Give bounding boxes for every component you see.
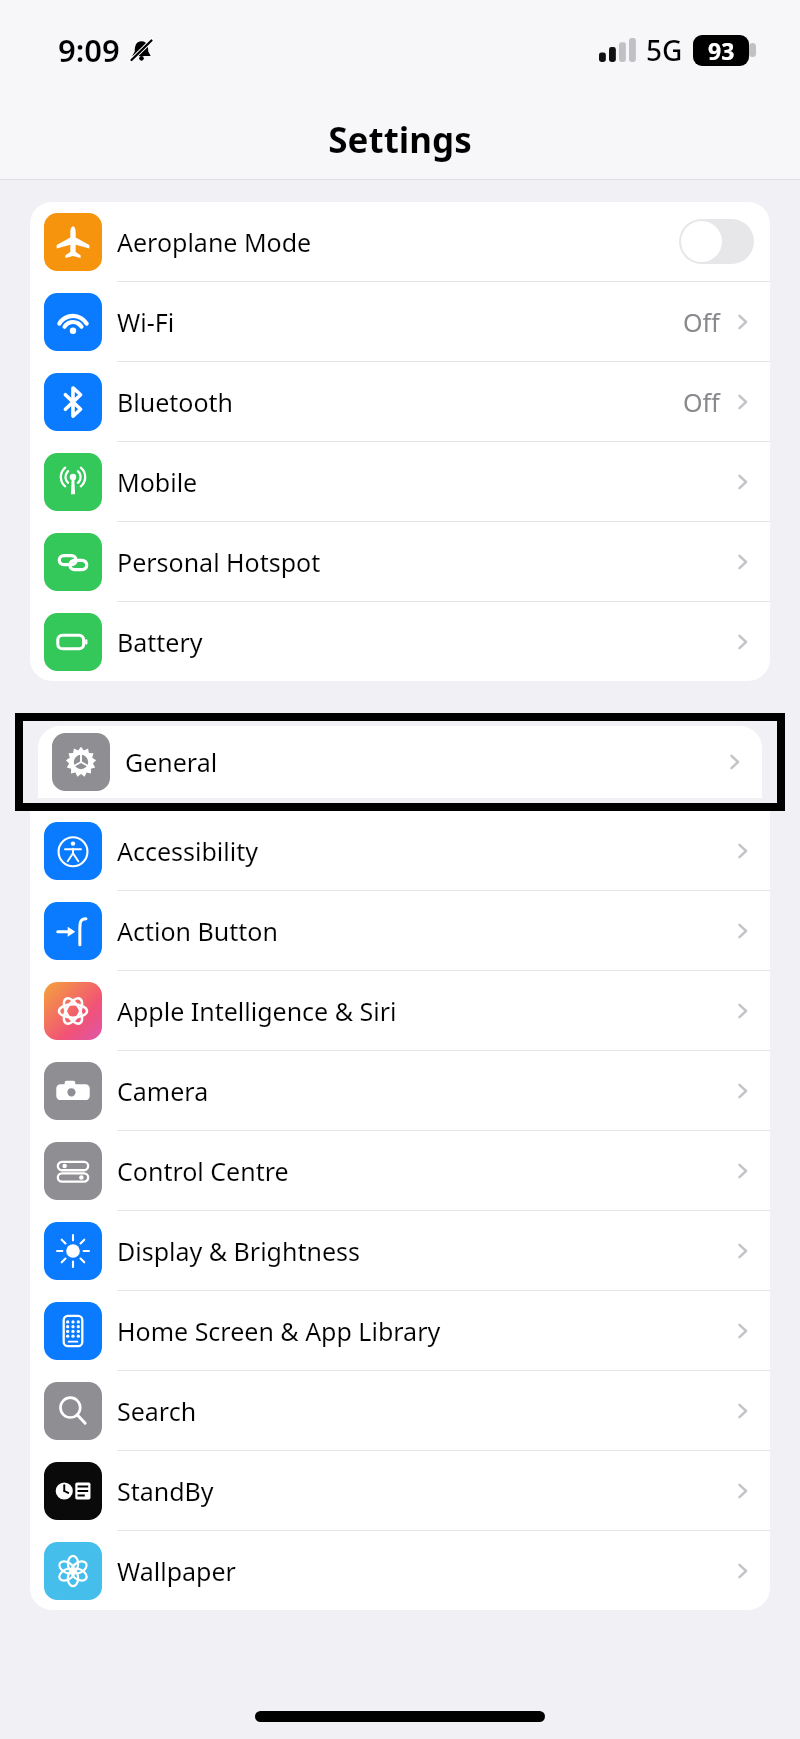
- button[interactable]: Bluetooth: [30, 362, 770, 442]
- other: Open: [732, 1080, 754, 1102]
- staticText: 5G: [646, 31, 683, 69]
- button[interactable]: Battery: [30, 602, 770, 681]
- staticText: General: [125, 745, 724, 779]
- other: Open: [732, 1160, 754, 1182]
- other: Open: [732, 391, 754, 413]
- staticText: Settings: [328, 116, 472, 164]
- button[interactable]: Control Centre: [30, 1131, 770, 1211]
- staticText: Wi-Fi: [117, 305, 683, 339]
- button[interactable]: Accessibility: [30, 811, 770, 891]
- button[interactable]: Apple Intelligence & Siri: [30, 971, 770, 1051]
- button[interactable]: Camera: [30, 1051, 770, 1131]
- staticText: StandBy: [117, 1474, 732, 1508]
- staticText: Battery: [117, 625, 732, 659]
- button[interactable]: Personal Hotspot: [30, 522, 770, 602]
- staticText: 93: [708, 35, 735, 66]
- staticText: Mobile: [117, 465, 732, 499]
- staticText: Search: [117, 1394, 732, 1428]
- button[interactable]: Wallpaper: [30, 1531, 770, 1610]
- other: Open: [732, 840, 754, 862]
- button[interactable]: General: [38, 726, 762, 798]
- staticText: Aeroplane Mode: [117, 225, 679, 259]
- other: Open: [732, 1480, 754, 1502]
- button[interactable]: Home Screen & App Library: [30, 1291, 770, 1371]
- button[interactable]: Mobile: [30, 442, 770, 522]
- button[interactable]: StandBy: [30, 1451, 770, 1531]
- other: Open: [732, 311, 754, 333]
- other: Open: [724, 751, 746, 773]
- other: Open: [732, 551, 754, 573]
- staticText: Display & Brightness: [117, 1234, 732, 1268]
- staticText: Wallpaper: [117, 1554, 732, 1588]
- staticText: Accessibility: [117, 834, 732, 868]
- button[interactable]: Wi-Fi: [30, 282, 770, 362]
- button[interactable]: Aeroplane Mode: [30, 202, 770, 282]
- other: Open: [732, 1240, 754, 1262]
- staticText: Personal Hotspot: [117, 545, 732, 579]
- staticText: Home Screen & App Library: [117, 1314, 732, 1348]
- other: Open: [732, 631, 754, 653]
- staticText: 9:09: [58, 29, 120, 71]
- staticText: Control Centre: [117, 1154, 732, 1188]
- staticText: Apple Intelligence & Siri: [117, 994, 732, 1028]
- staticText: Off: [683, 385, 720, 419]
- other: Open: [732, 920, 754, 942]
- button[interactable]: Action Button: [30, 891, 770, 971]
- other: Open: [732, 1400, 754, 1422]
- other: Open: [732, 1560, 754, 1582]
- button[interactable]: Display & Brightness: [30, 1211, 770, 1291]
- other: Open: [732, 471, 754, 493]
- other: Open: [732, 1000, 754, 1022]
- staticText: Camera: [117, 1074, 732, 1108]
- staticText: Bluetooth: [117, 385, 683, 419]
- staticText: Action Button: [117, 914, 732, 948]
- other: Open: [732, 1320, 754, 1342]
- button[interactable]: Aeroplane Mode off: [679, 219, 754, 264]
- button[interactable]: Search: [30, 1371, 770, 1451]
- staticText: Off: [683, 305, 720, 339]
